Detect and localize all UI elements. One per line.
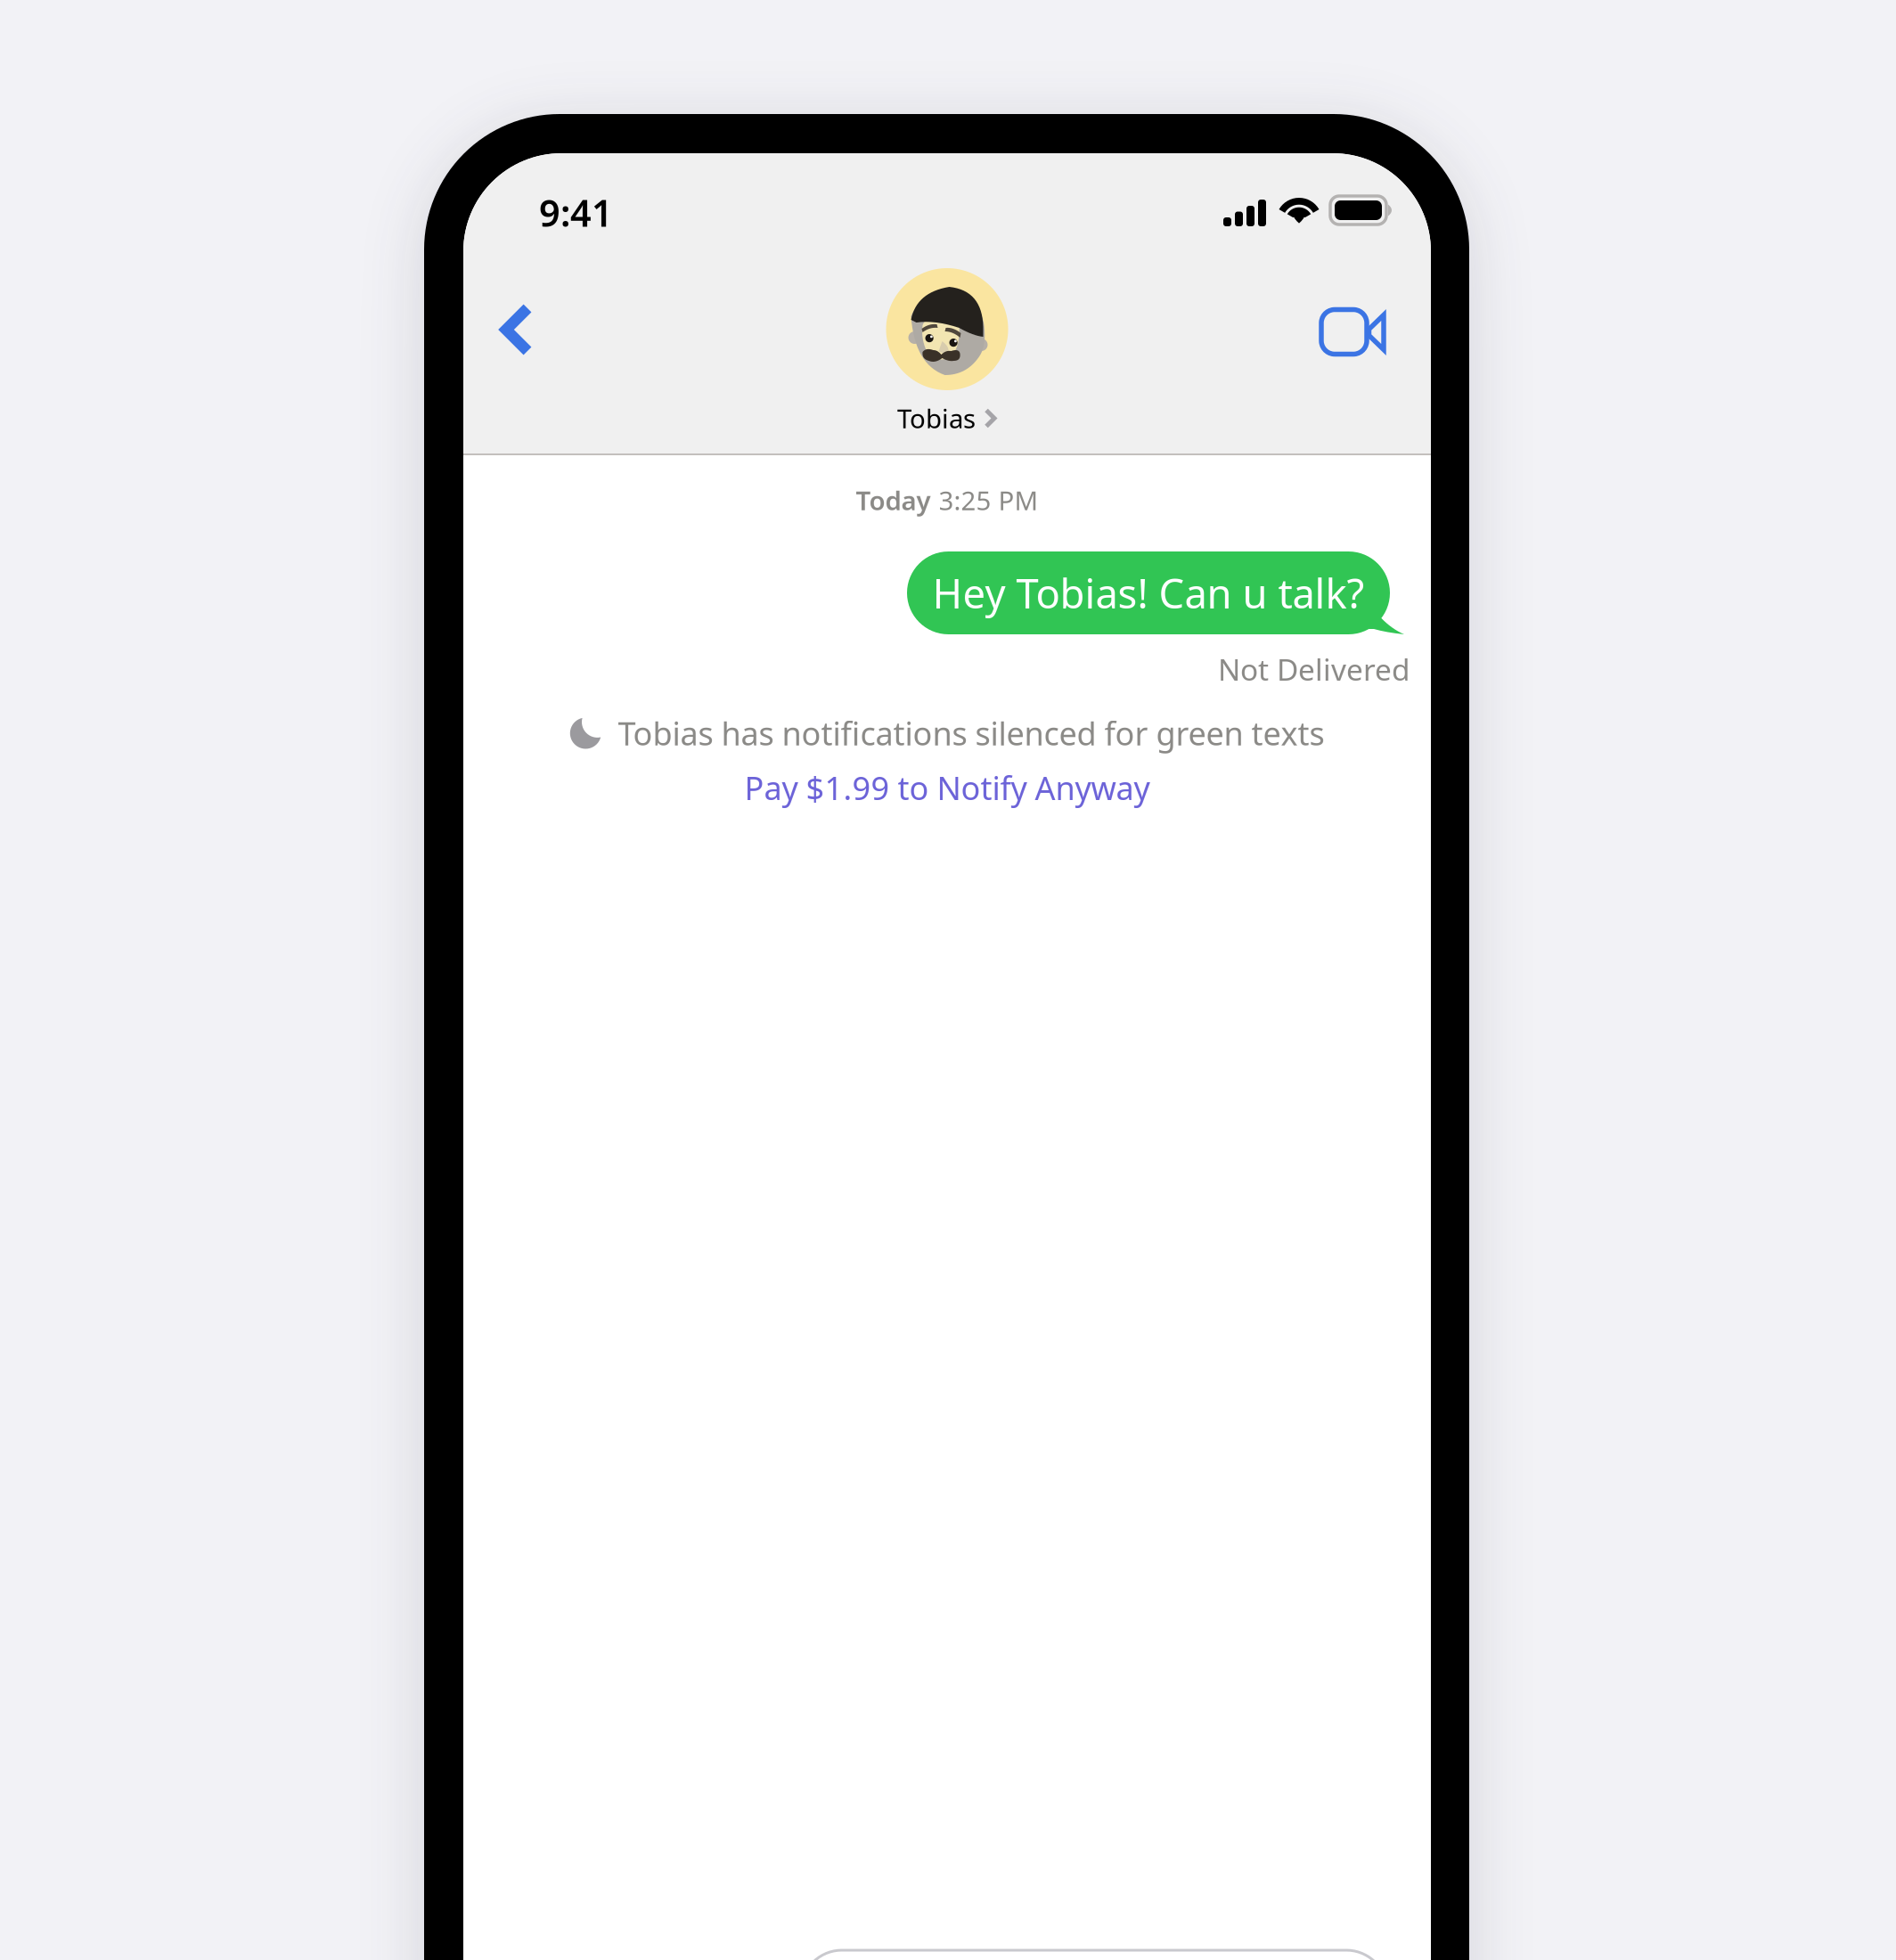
staticText: Today (856, 483, 931, 518)
staticText: Tobias has notifications silenced for gr… (618, 712, 1324, 754)
button[interactable]: Back (465, 271, 568, 388)
staticText: Not Delivered (1218, 649, 1410, 689)
button[interactable]: FaceTime video call (1276, 273, 1412, 391)
staticText: 9:41 (539, 188, 613, 237)
staticText: Hey Tobias! Can u talk? (932, 566, 1365, 620)
button[interactable]: Tobias (813, 263, 1081, 441)
staticText: 3:25 PM (939, 483, 1038, 518)
staticText: Tobias (897, 401, 976, 436)
staticText: Pay $1.99 to Notify Anyway (744, 766, 1150, 809)
button[interactable]: Pay $1.99 to Notify Anyway (463, 764, 1431, 811)
